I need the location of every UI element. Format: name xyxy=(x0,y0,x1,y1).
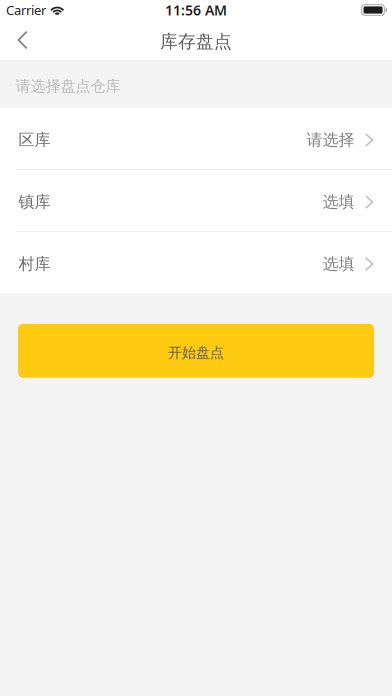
button[interactable]: 区库 xyxy=(0,108,392,169)
button[interactable]: 镇库 xyxy=(0,170,392,231)
staticText: 请选择盘点仓库 xyxy=(15,77,120,96)
button[interactable]: 村库 xyxy=(0,232,392,293)
staticText: 库存盘点 xyxy=(160,30,232,53)
staticText: 区库 xyxy=(18,130,50,150)
staticText: 开始盘点 xyxy=(168,344,224,362)
button[interactable]: 开始盘点 xyxy=(18,324,374,378)
staticText: Carrier xyxy=(6,1,46,19)
staticText: 选填 xyxy=(322,192,354,212)
staticText: 村库 xyxy=(18,254,50,274)
staticText: 请选择 xyxy=(306,130,354,150)
staticText: 11:56 AM xyxy=(165,0,227,20)
staticText: 选填 xyxy=(322,254,354,274)
button[interactable]: Back xyxy=(0,20,42,60)
staticText: 镇库 xyxy=(18,192,50,212)
